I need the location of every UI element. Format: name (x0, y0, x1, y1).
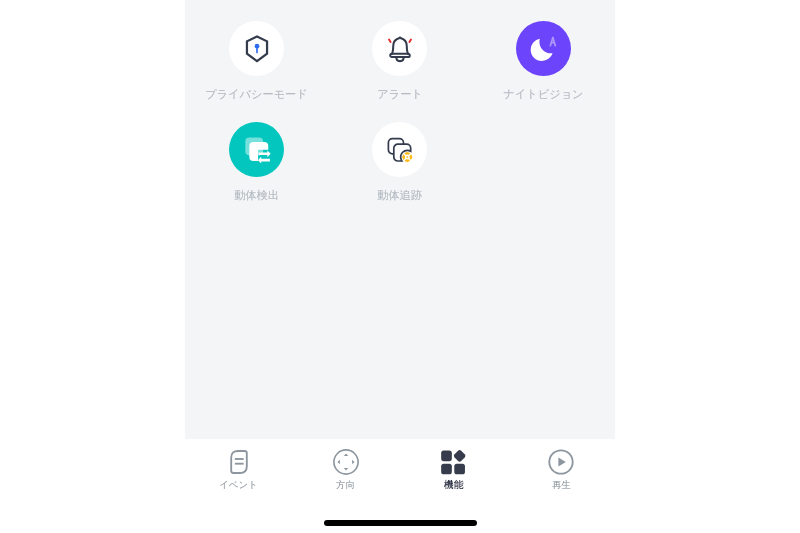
staticText: 機能 (444, 479, 463, 491)
other: Privacy mode (242, 34, 272, 64)
staticText: 再生 (552, 479, 571, 491)
other: Alert (385, 34, 415, 64)
staticText: 動体追跡 (377, 188, 422, 202)
button[interactable]: Alert (328, 21, 471, 101)
button[interactable]: Motion detection (185, 122, 328, 202)
button[interactable]: Events (185, 447, 292, 497)
other: Motion detection (242, 135, 272, 165)
button[interactable]: Playback (507, 447, 615, 497)
staticText: アラート (377, 87, 423, 101)
other: Direction (333, 449, 359, 475)
other: Playback (548, 449, 574, 475)
other: Motion tracking (385, 135, 415, 165)
staticText: 動体検出 (234, 188, 279, 202)
other: Features (440, 449, 466, 475)
staticText: プライバシーモード (205, 87, 308, 101)
button[interactable]: Night vision (472, 21, 615, 101)
staticText: イベント (219, 479, 258, 491)
other: Events (226, 449, 252, 475)
button[interactable]: Features (399, 447, 507, 497)
button[interactable]: Motion tracking (328, 122, 471, 202)
staticText: ナイトビジョン (503, 87, 584, 101)
other: Night vision (529, 34, 559, 64)
staticText: 方向 (336, 479, 355, 491)
button[interactable]: Privacy mode (185, 21, 328, 101)
button[interactable]: Direction (292, 447, 399, 497)
